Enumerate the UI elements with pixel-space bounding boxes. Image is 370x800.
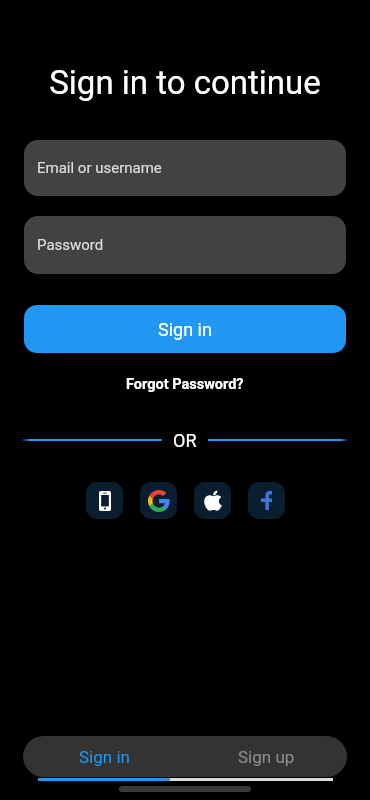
- button[interactable]: Sign in with Google: [140, 482, 177, 519]
- button[interactable]: Forgot Password?: [126, 376, 244, 393]
- button[interactable]: Password: [24, 216, 346, 274]
- button[interactable]: Email or username: [24, 140, 346, 196]
- staticText: Sign in: [158, 319, 212, 340]
- staticText: OR: [173, 430, 197, 451]
- staticText: Sign up: [238, 747, 295, 767]
- button[interactable]: Sign up: [185, 736, 347, 777]
- button[interactable]: Sign in: [24, 305, 346, 353]
- button[interactable]: Sign in: [23, 736, 185, 777]
- staticText: Password: [37, 236, 104, 254]
- button[interactable]: Sign in with Apple: [194, 482, 231, 519]
- button[interactable]: Sign in with Facebook: [248, 482, 285, 519]
- staticText: Email or username: [37, 159, 162, 177]
- button[interactable]: Sign in with phone: [86, 482, 123, 519]
- staticText: Sign in to continue: [0, 63, 370, 102]
- staticText: Sign in: [79, 747, 130, 767]
